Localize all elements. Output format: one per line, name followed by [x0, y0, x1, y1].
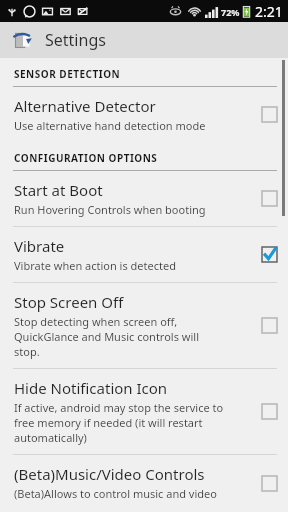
staticText: If active, android may stop the service …: [14, 400, 224, 415]
staticText: Vibrate: [14, 236, 65, 256]
staticText: stop.: [14, 344, 40, 359]
staticText: automatically): [14, 430, 87, 445]
button[interactable]: Alternative Detector: [0, 87, 288, 142]
staticText: free memory if needed (it will restart: [14, 415, 203, 430]
staticText: SENSOR DETECTION: [14, 67, 121, 81]
button[interactable]: Vibrate: [0, 227, 288, 282]
button[interactable]: Start at Boot: [0, 171, 288, 226]
staticText: (Beta)Allows to control music and video: [14, 486, 217, 501]
staticText: (Beta)Music/Video Controls: [14, 464, 205, 484]
staticText: Use alternative hand detection mode: [14, 118, 206, 133]
staticText: Settings: [45, 29, 106, 51]
staticText: Start at Boot: [14, 180, 103, 200]
staticText: Vibrate when action is detected: [14, 258, 176, 273]
staticText: Alternative Detector: [14, 96, 156, 116]
staticText: Stop Screen Off: [14, 292, 124, 312]
button[interactable]: (Beta)Music/Video Controls: [0, 455, 288, 512]
staticText: 72%: [221, 6, 240, 18]
staticText: Hide Notification Icon: [14, 378, 168, 398]
staticText: QuickGlance and Music controls will: [14, 329, 199, 344]
staticText: Run Hovering Controls when booting: [14, 202, 206, 217]
staticText: Stop detecting when screen off,: [14, 314, 178, 329]
button[interactable]: Hide Notification Icon: [0, 369, 288, 454]
button[interactable]: Stop Screen Off: [0, 283, 288, 368]
staticText: CONFIGURATION OPTIONS: [14, 151, 158, 165]
staticText: 2:21: [255, 2, 283, 21]
